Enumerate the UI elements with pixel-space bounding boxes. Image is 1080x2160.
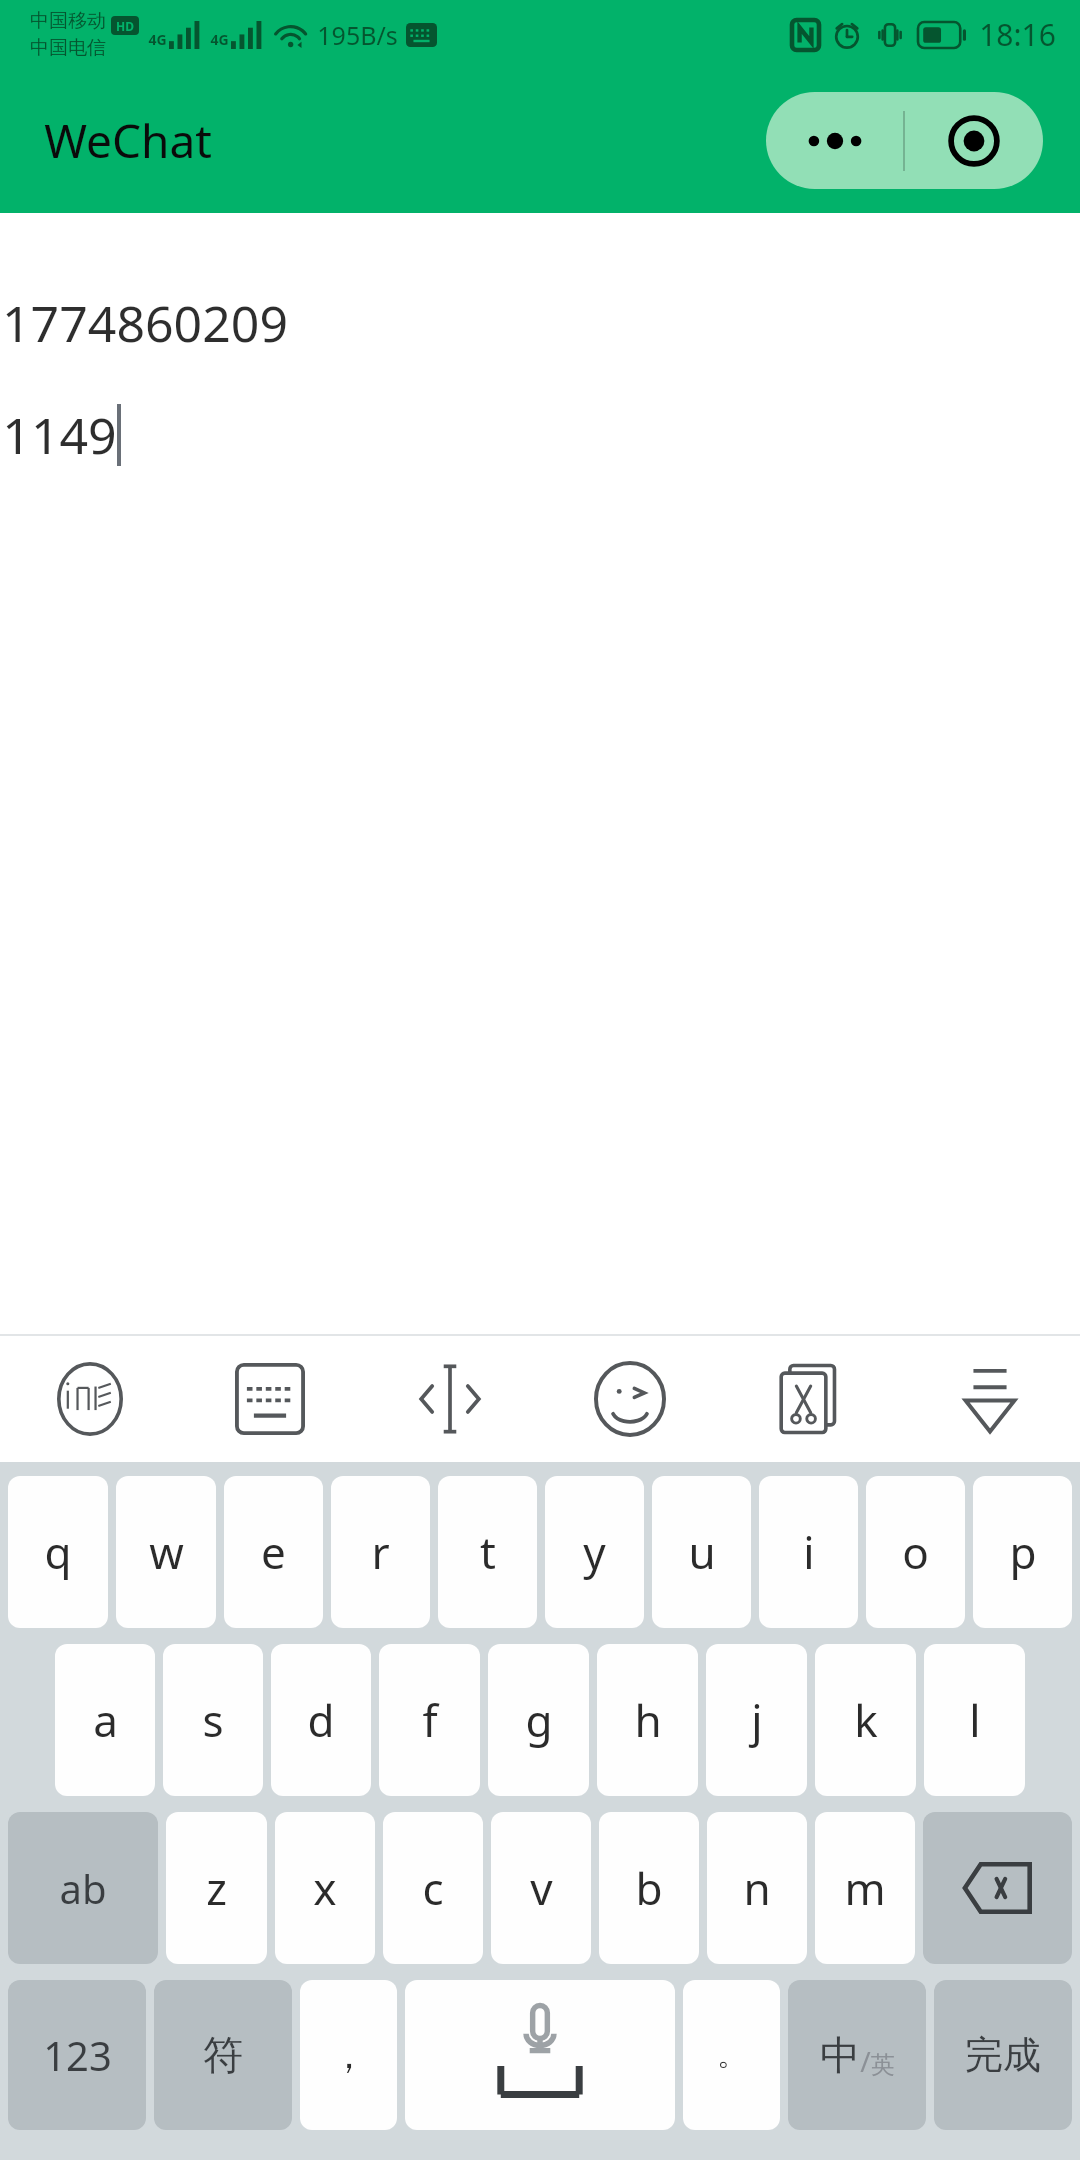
staticText: 18:16 [979, 14, 1056, 55]
staticText: t [480, 1522, 496, 1582]
staticText: l [969, 1690, 981, 1750]
button[interactable]: Input method [0, 1336, 180, 1462]
button[interactable]: 1149 [2, 401, 117, 469]
staticText: 中国电信 [30, 36, 106, 60]
staticText: e [261, 1522, 286, 1582]
button[interactable]: Backspace [923, 1812, 1072, 1964]
staticText: 195B/s [317, 18, 398, 52]
button[interactable]: f [379, 1644, 480, 1796]
staticText: s [202, 1690, 224, 1750]
button[interactable]: 123 [8, 1980, 146, 2130]
button[interactable]: Keyboard [180, 1336, 360, 1462]
button[interactable]: More [766, 92, 903, 189]
staticText: o [902, 1522, 929, 1582]
staticText: d [307, 1690, 335, 1750]
staticText: h [634, 1690, 662, 1750]
button[interactable]: p [973, 1476, 1072, 1628]
staticText: q [44, 1522, 72, 1582]
staticText: / [860, 2042, 871, 2080]
staticText: 4G [148, 30, 167, 49]
button[interactable]: y [545, 1476, 644, 1628]
staticText: w [149, 1522, 184, 1582]
staticText: i [803, 1522, 815, 1582]
staticText: 1774860209 [2, 289, 288, 357]
button[interactable]: b [599, 1812, 699, 1964]
staticText: r [371, 1522, 390, 1582]
staticText: g [525, 1690, 553, 1750]
button[interactable]: 中 [788, 1980, 926, 2130]
button[interactable]: ， [300, 1980, 397, 2130]
button[interactable]: x [275, 1812, 375, 1964]
button[interactable]: Emoji [540, 1336, 720, 1462]
button[interactable]: Text cursor [360, 1336, 540, 1462]
button[interactable]: t [438, 1476, 537, 1628]
staticText: ab [59, 1861, 107, 1915]
button[interactable]: z [166, 1812, 267, 1964]
staticText: HD [116, 18, 134, 34]
staticText: 英 [871, 2050, 895, 2080]
staticText: b [635, 1858, 663, 1918]
staticText: 。 [717, 2036, 747, 2074]
staticText: f [422, 1690, 438, 1750]
staticText: 中国移动 [30, 9, 106, 33]
staticText: 完成 [965, 2031, 1041, 2079]
button[interactable]: r [331, 1476, 430, 1628]
button[interactable]: v [491, 1812, 591, 1964]
button[interactable]: g [488, 1644, 589, 1796]
staticText: j [751, 1690, 763, 1750]
button[interactable]: h [597, 1644, 698, 1796]
button[interactable]: ab [8, 1812, 158, 1964]
staticText: ， [331, 2033, 367, 2078]
button[interactable]: WeChat [44, 109, 212, 172]
button[interactable]: 1774860209 [2, 289, 288, 357]
staticText: 符 [203, 2030, 243, 2080]
staticText: y [583, 1522, 606, 1582]
button[interactable]: Space [405, 1980, 675, 2130]
button[interactable]: j [706, 1644, 807, 1796]
button[interactable]: o [866, 1476, 965, 1628]
button[interactable]: m [815, 1812, 915, 1964]
staticText: u [688, 1522, 716, 1582]
button[interactable]: u [652, 1476, 751, 1628]
button[interactable]: i [759, 1476, 858, 1628]
staticText: v [530, 1858, 553, 1918]
button[interactable]: Clipboard [720, 1336, 900, 1462]
button[interactable]: a [55, 1644, 155, 1796]
button[interactable]: e [224, 1476, 323, 1628]
staticText: c [422, 1858, 444, 1918]
button[interactable]: s [163, 1644, 263, 1796]
staticText: z [206, 1858, 227, 1918]
staticText: WeChat [44, 109, 212, 172]
button[interactable]: d [271, 1644, 371, 1796]
staticText: p [1009, 1522, 1037, 1582]
button[interactable]: 。 [683, 1980, 780, 2130]
button[interactable]: k [815, 1644, 916, 1796]
button[interactable]: n [707, 1812, 807, 1964]
staticText: 1149 [2, 401, 117, 469]
button[interactable]: c [383, 1812, 483, 1964]
staticText: 中 [820, 2030, 860, 2080]
button[interactable]: 完成 [934, 1980, 1072, 2130]
button[interactable]: l [924, 1644, 1025, 1796]
staticText: m [844, 1858, 886, 1918]
staticText: 4G [210, 30, 229, 49]
button[interactable]: q [8, 1476, 108, 1628]
staticText: k [854, 1690, 878, 1750]
staticText: a [93, 1690, 118, 1750]
staticText: 123 [43, 2028, 112, 2082]
button[interactable]: Close mini program [905, 92, 1043, 189]
staticText: x [313, 1858, 337, 1918]
button[interactable]: w [116, 1476, 216, 1628]
button[interactable]: 符 [154, 1980, 292, 2130]
staticText: n [743, 1858, 771, 1918]
button[interactable]: Hide keyboard [900, 1336, 1080, 1462]
